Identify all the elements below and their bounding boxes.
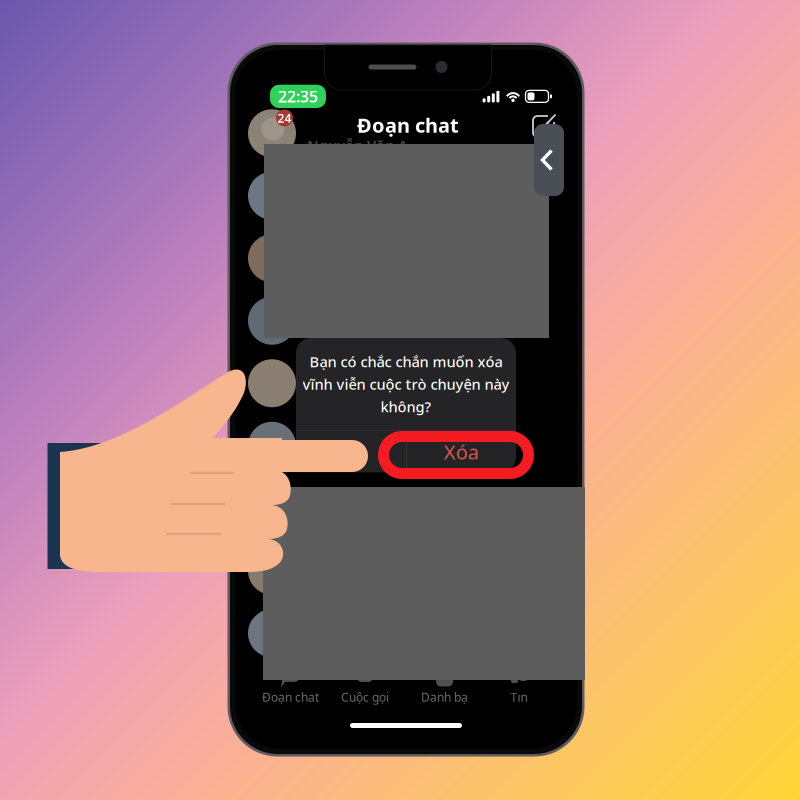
button[interactable]: Cancel bbox=[296, 431, 406, 472]
staticText: Bạn có chắc chắn muốn xóa bbox=[309, 352, 502, 371]
button[interactable]: Back bbox=[534, 124, 564, 196]
staticText: Đoạn chat bbox=[262, 689, 319, 705]
button[interactable]: Tin bbox=[482, 663, 556, 709]
button[interactable]: Danh bạ bbox=[407, 663, 481, 709]
staticText: Nguyễn Văn A bbox=[307, 136, 408, 155]
button[interactable]: Nguyễn Văn A bbox=[235, 102, 577, 164]
button[interactable] bbox=[235, 539, 577, 602]
staticText: 24 bbox=[277, 110, 291, 126]
staticText: Tin bbox=[510, 689, 527, 705]
button[interactable] bbox=[235, 164, 577, 227]
staticText: Đoạn chat bbox=[357, 112, 459, 138]
button[interactable] bbox=[235, 602, 577, 664]
staticText: không? bbox=[380, 397, 431, 416]
staticText: vĩnh viễn cuộc trò chuyện này bbox=[302, 374, 509, 394]
button[interactable]: Cuộc gọi bbox=[328, 663, 402, 709]
button[interactable]: New message bbox=[530, 110, 560, 140]
staticText: Danh bạ bbox=[421, 689, 468, 705]
button[interactable] bbox=[235, 352, 577, 414]
button[interactable]: Profile bbox=[256, 109, 290, 141]
button[interactable] bbox=[235, 414, 577, 477]
staticText: Xóa bbox=[444, 439, 479, 465]
button[interactable] bbox=[235, 289, 577, 352]
staticText: 22:35 bbox=[278, 86, 318, 107]
button[interactable]: Đoạn chat bbox=[253, 663, 327, 709]
staticText: Cuộc gọi bbox=[341, 689, 389, 705]
button[interactable]: Xóa bbox=[407, 431, 516, 472]
button[interactable] bbox=[235, 477, 577, 539]
button[interactable] bbox=[235, 227, 577, 289]
